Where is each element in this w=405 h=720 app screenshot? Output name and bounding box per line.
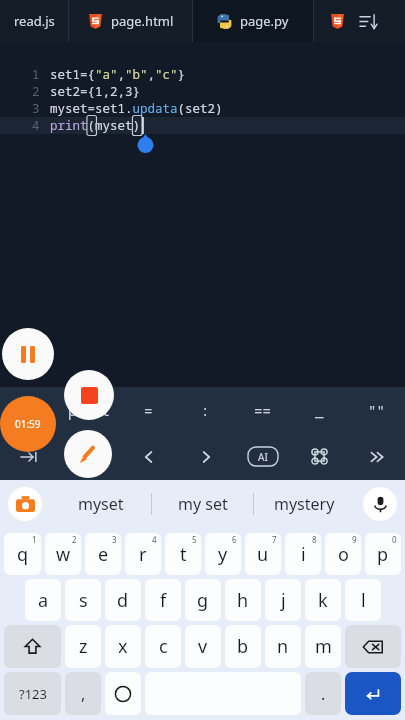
button[interactable]: "" [348, 387, 405, 433]
button[interactable]: page.html [69, 0, 192, 42]
staticText: == [254, 401, 271, 420]
staticText: k [318, 588, 328, 613]
staticText: f [160, 588, 167, 613]
button[interactable]: j [265, 579, 301, 621]
staticText: set2={1,2,3} [50, 83, 141, 100]
staticText: 3 [32, 100, 40, 117]
staticText: . [321, 683, 326, 705]
button[interactable]: Tab [0, 433, 57, 480]
staticText: 3 [112, 534, 117, 545]
staticText: 7 [272, 534, 277, 545]
button[interactable]: Period [305, 672, 341, 715]
button[interactable]: h [225, 579, 261, 621]
other: AI assistant [248, 447, 278, 466]
button[interactable]: == [234, 387, 291, 433]
button[interactable]: v [185, 625, 221, 668]
button[interactable]: q [4, 533, 41, 575]
button[interactable]: a [25, 579, 61, 621]
button[interactable]: m [305, 625, 341, 668]
button[interactable]: my set [152, 480, 253, 528]
button[interactable]: i [285, 533, 321, 575]
button[interactable]: myset [50, 480, 151, 528]
staticText: y [218, 542, 228, 567]
staticText: 6 [232, 534, 237, 545]
button[interactable]: Arrow [177, 433, 234, 480]
button[interactable]: Braces [0, 387, 57, 433]
button[interactable]: Command [291, 433, 348, 480]
button[interactable]: Stop [64, 370, 114, 420]
staticText: 8 [312, 534, 317, 545]
button[interactable]: l [345, 579, 381, 621]
staticText: read.js [14, 12, 55, 30]
button[interactable]: More [348, 433, 405, 480]
button[interactable]: Timer 01:59 [0, 396, 56, 452]
staticText: x [118, 634, 128, 659]
button[interactable]: n [265, 625, 301, 668]
staticText: v [198, 634, 208, 659]
staticText: r [139, 542, 147, 567]
other: Arrow [196, 447, 216, 467]
staticText: u [257, 542, 269, 567]
button[interactable]: y [205, 533, 241, 575]
button[interactable]: t [165, 533, 201, 575]
staticText: c [159, 634, 168, 659]
button[interactable]: Arrow [57, 433, 120, 480]
button[interactable]: u [245, 533, 281, 575]
button[interactable]: page.py [193, 0, 313, 42]
button[interactable]: e [85, 533, 121, 575]
button[interactable]: r [125, 533, 161, 575]
button[interactable]: Pause [2, 328, 54, 380]
button[interactable]: p [365, 533, 401, 575]
button[interactable]: HTML file [324, 8, 350, 34]
staticText: page.html [111, 12, 174, 30]
staticText: q [17, 542, 29, 567]
button[interactable]: read.js [0, 0, 68, 42]
staticText: b [237, 634, 249, 659]
button[interactable]: Comma [65, 672, 101, 715]
button[interactable]: _ [291, 387, 348, 433]
button[interactable]: Backspace [345, 625, 401, 668]
staticText: n [277, 634, 289, 659]
button[interactable]: Brush [64, 430, 112, 478]
button[interactable]: Toolbox [0, 480, 50, 528]
button[interactable]: Sort [354, 7, 382, 35]
button[interactable]: g [185, 579, 221, 621]
button[interactable]: b [225, 625, 261, 668]
button[interactable]: w [45, 533, 81, 575]
button[interactable]: f [145, 579, 181, 621]
other: Arrow [79, 447, 99, 467]
staticText: g [197, 588, 209, 613]
staticText: 0 [392, 534, 397, 545]
staticText: e [98, 542, 109, 567]
button[interactable]: s [65, 579, 101, 621]
button[interactable]: k [305, 579, 341, 621]
button[interactable]: : [177, 387, 234, 433]
staticText: my set [178, 493, 228, 515]
button[interactable] [105, 672, 141, 715]
button[interactable]: Shift [4, 625, 61, 668]
button[interactable]: AI assistant [234, 433, 291, 480]
staticText: page.py [240, 12, 289, 30]
staticText: l [361, 588, 366, 613]
button[interactable]: Symbols [4, 672, 61, 715]
button[interactable]: c [145, 625, 181, 668]
staticText: print(myset) [50, 117, 141, 134]
button[interactable]: mystery [254, 480, 355, 528]
button[interactable]: print [57, 387, 120, 433]
staticText: set1={"a","b","c"} [50, 66, 186, 83]
button[interactable]: Voice input [355, 480, 405, 528]
staticText: 2 [72, 534, 77, 545]
button[interactable]: o [325, 533, 361, 575]
staticText: m [315, 634, 332, 659]
button[interactable]: Arrow [120, 433, 177, 480]
staticText: i [301, 542, 306, 567]
button[interactable]: = [120, 387, 177, 433]
button[interactable]: d [105, 579, 141, 621]
staticText: 4 [32, 117, 40, 134]
staticText: s [79, 588, 88, 613]
button[interactable]: Enter [345, 672, 401, 715]
button[interactable]: x [105, 625, 141, 668]
button[interactable]: z [65, 625, 101, 668]
